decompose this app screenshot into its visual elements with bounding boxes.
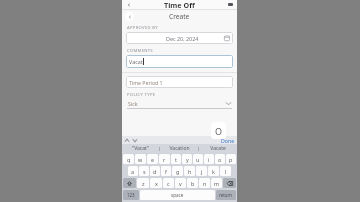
button[interactable]: c [163, 178, 174, 188]
staticText: z [142, 180, 145, 187]
button[interactable]: Menu [227, 1, 234, 8]
staticText: n [203, 180, 207, 187]
staticText: u [196, 156, 200, 163]
button[interactable]: Previous field [124, 137, 130, 143]
staticText: m [214, 180, 220, 187]
button[interactable]: Sick [126, 99, 233, 109]
button[interactable]: "Vacat" [122, 144, 159, 153]
button[interactable]: e [147, 154, 158, 164]
button[interactable]: q [123, 154, 134, 164]
button[interactable]: p [226, 154, 236, 164]
button[interactable]: Back [125, 12, 134, 21]
button[interactable]: n [199, 178, 210, 188]
staticText: space [171, 192, 184, 198]
button[interactable]: f [161, 166, 171, 176]
staticText: APPROVED BY [127, 25, 158, 31]
button[interactable]: return [216, 190, 236, 200]
staticText: d [153, 168, 157, 175]
staticText: Done [221, 137, 235, 144]
staticText: "Vacat" [132, 145, 149, 152]
button[interactable]: v [175, 178, 186, 188]
staticText: q [127, 156, 131, 163]
staticText: Vacation [169, 145, 190, 152]
button[interactable]: y [182, 154, 192, 164]
staticText: w [138, 156, 143, 163]
button[interactable]: g [172, 166, 183, 176]
button[interactable]: u [193, 154, 203, 164]
staticText: Vacat [129, 58, 143, 65]
button[interactable]: m [211, 178, 222, 188]
button[interactable]: w [135, 154, 146, 164]
button[interactable]: s [139, 166, 149, 176]
staticText: l [225, 168, 227, 175]
button[interactable]: l [220, 166, 231, 176]
button[interactable]: d [150, 166, 160, 176]
staticText: p [229, 156, 233, 163]
staticText: g [176, 168, 180, 175]
staticText: Create [169, 12, 190, 21]
button[interactable]: z [137, 178, 149, 188]
staticText: POLICY TYPE [127, 92, 156, 98]
button[interactable]: Next field [132, 137, 138, 143]
button[interactable]: r [159, 154, 170, 164]
staticText: Time Off [164, 0, 195, 9]
button[interactable]: Pick date [224, 35, 230, 41]
button[interactable]: Shift [123, 178, 136, 188]
button[interactable]: a [128, 166, 138, 176]
staticText: Vacate [210, 145, 226, 152]
staticText: 123 [127, 192, 135, 198]
button[interactable]: Vacate [199, 144, 237, 153]
staticText: Dec 20, 2024 [166, 35, 199, 42]
staticText: O [215, 125, 223, 137]
staticText: COMMENTS [127, 48, 153, 54]
button[interactable]: 123 [123, 190, 139, 200]
staticText: Time Period 1 [129, 79, 163, 86]
staticText: e [151, 156, 155, 163]
staticText: f [165, 168, 167, 175]
staticText: a [131, 168, 135, 175]
button[interactable]: space [140, 190, 215, 200]
button[interactable]: x [150, 178, 162, 188]
button[interactable]: Done [221, 137, 235, 144]
button[interactable]: i [204, 154, 214, 164]
staticText: t [175, 156, 177, 163]
staticText: Sick [128, 100, 138, 107]
button[interactable]: Vacation [160, 144, 198, 153]
staticText: s [143, 168, 146, 175]
button[interactable]: Time Period 1 [126, 76, 233, 88]
staticText: v [179, 180, 182, 187]
button[interactable]: o [215, 154, 225, 164]
button[interactable]: Vacat [126, 55, 233, 68]
staticText: j [201, 168, 203, 175]
staticText: return [219, 192, 233, 198]
staticText: r [163, 156, 166, 163]
button[interactable]: t [171, 154, 181, 164]
staticText: b [191, 180, 195, 187]
staticText: i [208, 156, 210, 163]
button[interactable]: Back [125, 1, 132, 8]
staticText: k [212, 168, 215, 175]
staticText: h [188, 168, 192, 175]
button[interactable]: Dec 20, 2024 [126, 32, 233, 44]
staticText: c [167, 180, 170, 187]
button[interactable]: h [184, 166, 195, 176]
staticText: y [186, 156, 189, 163]
button[interactable]: j [196, 166, 207, 176]
staticText: o [218, 156, 222, 163]
button[interactable]: b [187, 178, 198, 188]
button[interactable]: k [208, 166, 219, 176]
staticText: x [155, 180, 158, 187]
button[interactable]: Backspace [223, 178, 236, 188]
